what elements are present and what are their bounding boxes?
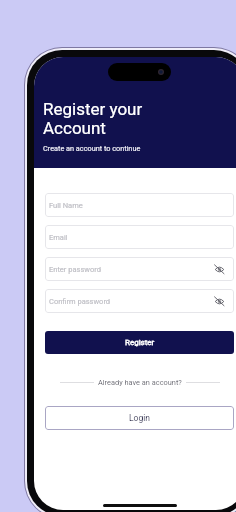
button[interactable]: Email (45, 225, 234, 249)
staticText: Full Name (49, 201, 83, 210)
button[interactable]: Show password (212, 294, 227, 309)
staticText: Login (129, 413, 150, 423)
button[interactable]: Enter password (45, 257, 234, 281)
staticText: Enter password (49, 265, 101, 274)
button[interactable]: Confirm password (45, 289, 234, 313)
staticText: Create an account to continue (43, 144, 141, 153)
staticText: Already have an account? (98, 378, 182, 387)
staticText: Account (43, 118, 106, 138)
button[interactable]: Login (45, 406, 234, 430)
button[interactable]: Full Name (45, 193, 234, 217)
staticText: Register your (43, 99, 143, 119)
staticText: Confirm password (49, 297, 111, 306)
staticText: Email (49, 233, 68, 242)
button[interactable]: Show password (212, 262, 227, 277)
button[interactable]: Register (45, 331, 234, 354)
staticText: Register (125, 338, 155, 347)
